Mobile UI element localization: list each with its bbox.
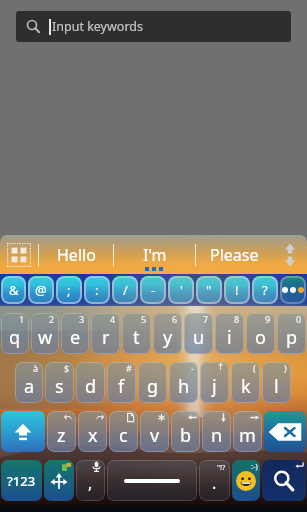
button[interactable]: z bbox=[47, 411, 76, 452]
button[interactable]: 1 bbox=[1, 313, 29, 354]
button[interactable]: " bbox=[196, 276, 222, 304]
staticText: b bbox=[180, 423, 192, 448]
button[interactable]: ? bbox=[252, 276, 278, 304]
button[interactable]: ; bbox=[56, 276, 82, 304]
staticText: ! bbox=[235, 281, 239, 299]
button[interactable]: d bbox=[76, 362, 105, 403]
button[interactable]: I'm bbox=[114, 235, 195, 274]
button[interactable]: 9 bbox=[246, 313, 275, 354]
button[interactable]: 2 bbox=[31, 313, 59, 354]
staticText: , bbox=[88, 472, 93, 494]
staticText: $ bbox=[64, 362, 70, 374]
button[interactable]: ?123 bbox=[1, 460, 42, 501]
staticText: z bbox=[57, 423, 66, 448]
button[interactable]: n bbox=[202, 411, 231, 452]
button[interactable]: / bbox=[112, 276, 138, 304]
button[interactable]: "!? bbox=[199, 460, 230, 501]
button[interactable]: b bbox=[171, 411, 200, 452]
button[interactable]: x bbox=[78, 411, 107, 452]
button[interactable]: 3 bbox=[61, 313, 89, 354]
button[interactable]: : bbox=[84, 276, 110, 304]
button[interactable]: Input keywords bbox=[16, 11, 291, 42]
button[interactable]: 0 bbox=[277, 313, 306, 354]
staticText: :-) bbox=[251, 461, 258, 471]
button[interactable]: ! bbox=[224, 276, 250, 304]
staticText: g bbox=[147, 374, 159, 399]
button[interactable]: Emoji bbox=[232, 460, 260, 501]
staticText: x bbox=[88, 423, 98, 448]
staticText: Please bbox=[210, 244, 259, 266]
button[interactable]: m bbox=[233, 411, 262, 452]
staticText: ) bbox=[284, 362, 287, 374]
button[interactable]: Backspace bbox=[264, 411, 306, 452]
button[interactable]: More symbols bbox=[280, 276, 306, 304]
staticText: a bbox=[24, 374, 35, 399]
staticText: t bbox=[133, 325, 140, 350]
staticText: i bbox=[227, 325, 232, 350]
staticText: : bbox=[95, 281, 99, 299]
button[interactable]: ' bbox=[168, 276, 194, 304]
staticText: Hello bbox=[57, 244, 96, 266]
staticText: @ bbox=[35, 281, 47, 299]
staticText: . bbox=[212, 472, 217, 494]
staticText: ? bbox=[262, 281, 268, 299]
button[interactable]: ( bbox=[231, 362, 260, 403]
button[interactable]: Please bbox=[196, 235, 272, 274]
button[interactable]: # bbox=[107, 362, 136, 403]
staticText: / bbox=[123, 281, 128, 299]
staticText: ; bbox=[67, 281, 71, 299]
staticText: 4 bbox=[110, 313, 116, 325]
staticText: I'm bbox=[143, 244, 167, 266]
staticText: y bbox=[163, 325, 173, 350]
staticText: Input keywords bbox=[52, 18, 143, 35]
staticText: f bbox=[118, 374, 125, 399]
staticText: ?123 bbox=[7, 472, 36, 490]
staticText: k bbox=[241, 374, 251, 399]
staticText: w bbox=[38, 325, 53, 350]
staticText: - bbox=[151, 281, 156, 299]
staticText: 6 bbox=[172, 313, 178, 325]
button[interactable]: 8 bbox=[215, 313, 244, 354]
staticText: c bbox=[119, 423, 128, 448]
button[interactable]: , bbox=[76, 460, 105, 501]
staticText: p bbox=[286, 325, 298, 350]
button[interactable]: v bbox=[140, 411, 169, 452]
button[interactable]: & bbox=[1, 276, 26, 304]
button[interactable]: Space bbox=[107, 460, 197, 501]
staticText: 5 bbox=[141, 313, 147, 325]
staticText: # bbox=[126, 362, 132, 374]
staticText: u bbox=[193, 325, 205, 350]
button[interactable]: 6 bbox=[153, 313, 182, 354]
staticText: h bbox=[178, 374, 190, 399]
button[interactable]: - bbox=[140, 276, 166, 304]
button[interactable]: $ bbox=[45, 362, 74, 403]
button[interactable]: 5 bbox=[122, 313, 151, 354]
staticText: e bbox=[70, 325, 81, 350]
button[interactable]: 4 bbox=[91, 313, 120, 354]
button[interactable]: @ bbox=[28, 276, 54, 304]
button[interactable]: Keyboard menu bbox=[0, 235, 38, 274]
button[interactable]: g bbox=[138, 362, 167, 403]
button[interactable]: Search bbox=[262, 460, 306, 501]
button[interactable]: Hello bbox=[39, 235, 113, 274]
staticText: j bbox=[212, 374, 217, 399]
button[interactable]: ) bbox=[262, 362, 291, 403]
button[interactable]: Move cursor bbox=[44, 460, 74, 501]
staticText: 8 bbox=[234, 313, 240, 325]
staticText: - bbox=[191, 362, 194, 374]
button[interactable]: c bbox=[109, 411, 138, 452]
button[interactable]: ↑ bbox=[200, 362, 229, 403]
staticText: o bbox=[255, 325, 266, 350]
staticText: " bbox=[206, 281, 212, 299]
button[interactable]: à bbox=[15, 362, 43, 403]
button[interactable]: - bbox=[169, 362, 198, 403]
staticText: ↑ bbox=[217, 362, 225, 372]
staticText: s bbox=[55, 374, 64, 399]
staticText: r bbox=[102, 325, 110, 350]
button[interactable]: Expand candidates bbox=[272, 235, 307, 274]
button[interactable]: 7 bbox=[184, 313, 213, 354]
button[interactable]: Shift bbox=[1, 411, 45, 452]
staticText: ' bbox=[180, 281, 183, 299]
staticText: 7 bbox=[203, 313, 209, 325]
staticText: à bbox=[33, 362, 39, 374]
